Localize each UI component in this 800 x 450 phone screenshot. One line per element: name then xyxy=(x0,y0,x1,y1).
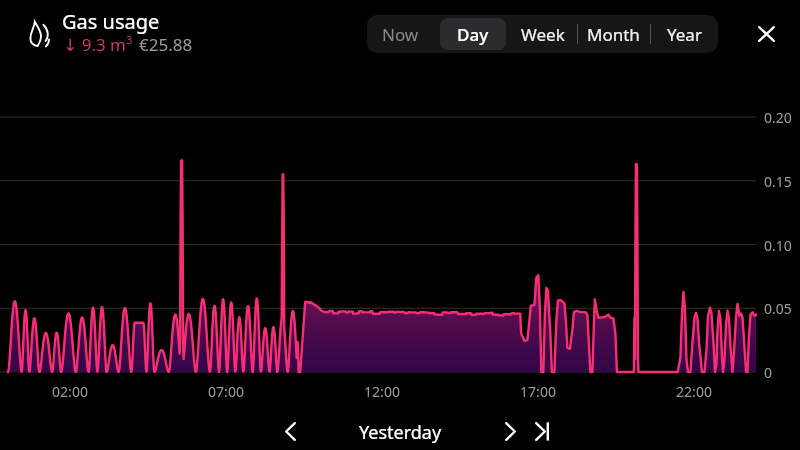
staticText: Gas usage xyxy=(62,8,160,35)
button[interactable]: Month xyxy=(578,18,648,50)
staticText: 3 xyxy=(126,32,133,47)
staticText: 12:00 xyxy=(358,382,406,401)
button[interactable]: Week xyxy=(509,18,577,50)
staticText: ↓ 9.3 m xyxy=(63,33,126,56)
button[interactable]: Yesterday xyxy=(340,414,461,450)
button[interactable]: Close xyxy=(747,14,786,53)
staticText: €25.88 xyxy=(139,33,193,56)
staticText: Now xyxy=(382,23,419,46)
button[interactable]: Now xyxy=(367,18,436,50)
staticText: Month xyxy=(587,23,640,46)
staticText: 0.20 xyxy=(764,108,792,127)
button[interactable]: Day xyxy=(440,18,506,50)
staticText: Yesterday xyxy=(359,420,442,445)
staticText: 02:00 xyxy=(46,382,94,401)
staticText: 0.15 xyxy=(764,172,792,191)
staticText: 17:00 xyxy=(514,382,562,401)
button[interactable]: Previous day xyxy=(269,410,311,450)
button[interactable]: Year xyxy=(651,18,717,50)
staticText: Week xyxy=(521,23,565,46)
staticText: 0.05 xyxy=(764,299,792,318)
staticText: 22:00 xyxy=(670,382,718,401)
staticText: 0.10 xyxy=(764,236,792,255)
staticText: Day xyxy=(457,23,489,46)
staticText: 07:00 xyxy=(202,382,250,401)
button[interactable]: Next day xyxy=(489,410,531,450)
staticText: 0 xyxy=(764,363,773,382)
staticText: Year xyxy=(667,23,702,46)
button[interactable]: Jump to latest xyxy=(521,410,563,450)
